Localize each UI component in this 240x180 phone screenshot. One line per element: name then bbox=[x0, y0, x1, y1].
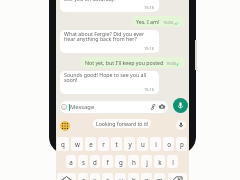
button[interactable]: x bbox=[90, 173, 100, 180]
button[interactable]: f bbox=[102, 155, 113, 168]
other: Camera bbox=[159, 104, 165, 110]
button[interactable]: Looking forward to it! bbox=[93, 119, 151, 128]
button[interactable]: What about Fergie? Did you ever hear any… bbox=[60, 30, 159, 53]
staticText: g bbox=[119, 158, 123, 166]
button[interactable]: y bbox=[124, 137, 135, 151]
staticText: s bbox=[82, 158, 85, 166]
staticText: h bbox=[132, 158, 136, 166]
button[interactable]: Voice input bbox=[176, 120, 186, 130]
staticText: t bbox=[115, 140, 118, 148]
button[interactable]: a bbox=[66, 155, 76, 168]
staticText: Not yet, but I'll keep you posted bbox=[85, 59, 164, 66]
button[interactable]: j bbox=[141, 155, 152, 168]
staticText: p bbox=[180, 140, 184, 148]
staticText: v bbox=[119, 176, 123, 180]
staticText: i bbox=[155, 140, 157, 148]
staticText: Yes, I am! bbox=[136, 18, 160, 25]
staticText: q bbox=[61, 140, 65, 148]
staticText: m bbox=[157, 176, 163, 180]
staticText: d bbox=[93, 158, 97, 166]
staticText: r bbox=[102, 140, 105, 148]
button[interactable]: s bbox=[78, 155, 88, 168]
staticText: y bbox=[128, 140, 132, 148]
button[interactable]: p bbox=[176, 137, 187, 151]
staticText: o bbox=[167, 140, 171, 148]
staticText: c bbox=[106, 176, 109, 180]
staticText: u bbox=[141, 140, 145, 148]
button[interactable]: w bbox=[71, 137, 83, 151]
staticText: 15:03 bbox=[166, 61, 176, 66]
staticText: l bbox=[172, 158, 174, 166]
button[interactable]: h bbox=[128, 155, 139, 168]
button[interactable]: Shift bbox=[57, 173, 76, 180]
button[interactable]: n bbox=[141, 173, 152, 180]
button[interactable]: c bbox=[102, 173, 113, 180]
staticText: 15:16 bbox=[144, 46, 154, 51]
button[interactable]: Not yet, but I'll keep you posted bbox=[81, 57, 185, 68]
staticText: 15:16 bbox=[144, 87, 154, 92]
button[interactable]: Yes, I am! bbox=[132, 16, 185, 27]
staticText: a bbox=[69, 158, 73, 166]
staticText: Sounds good! Hope to see you all soon! bbox=[64, 71, 147, 84]
button[interactable]: Record voice message bbox=[173, 98, 188, 113]
button[interactable]: i bbox=[150, 137, 161, 151]
staticText: f bbox=[106, 158, 109, 166]
staticText: What about Fergie? Did you ever hear any… bbox=[64, 30, 145, 43]
staticText: z bbox=[82, 176, 85, 180]
staticText: j bbox=[146, 158, 148, 166]
button[interactable]: Message bbox=[60, 101, 168, 113]
button[interactable]: See you on Saturday! bbox=[60, 0, 159, 12]
other: Attach file bbox=[150, 104, 156, 110]
button[interactable]: k bbox=[154, 155, 165, 168]
button[interactable]: Emoji keyboard bbox=[60, 121, 70, 131]
staticText: x bbox=[93, 176, 97, 180]
button[interactable]: t bbox=[111, 137, 122, 151]
button[interactable]: q bbox=[57, 137, 69, 151]
button[interactable]: Backspace bbox=[168, 173, 187, 180]
staticText: Message bbox=[70, 103, 95, 111]
staticText: Looking forward to it! bbox=[96, 120, 149, 127]
staticText: 15:03 bbox=[163, 20, 173, 25]
button[interactable]: l bbox=[167, 155, 178, 168]
staticText: w bbox=[75, 140, 80, 148]
staticText: 15:16 bbox=[144, 5, 154, 10]
button[interactable]: g bbox=[115, 155, 126, 168]
button[interactable]: Sounds good! Hope to see you all soon! bbox=[60, 71, 159, 94]
button[interactable]: z bbox=[78, 173, 88, 180]
button[interactable]: u bbox=[137, 137, 148, 151]
button[interactable]: m bbox=[154, 173, 165, 180]
staticText: b bbox=[132, 176, 136, 180]
button[interactable]: e bbox=[85, 137, 96, 151]
button[interactable]: v bbox=[115, 173, 126, 180]
button[interactable]: b bbox=[128, 173, 139, 180]
staticText: n bbox=[145, 176, 149, 180]
staticText: k bbox=[158, 158, 162, 166]
staticText: e bbox=[89, 140, 93, 148]
button[interactable]: d bbox=[90, 155, 100, 168]
staticText: See you on Saturday! bbox=[64, 0, 116, 2]
button[interactable]: o bbox=[163, 137, 174, 151]
button[interactable]: r bbox=[98, 137, 109, 151]
